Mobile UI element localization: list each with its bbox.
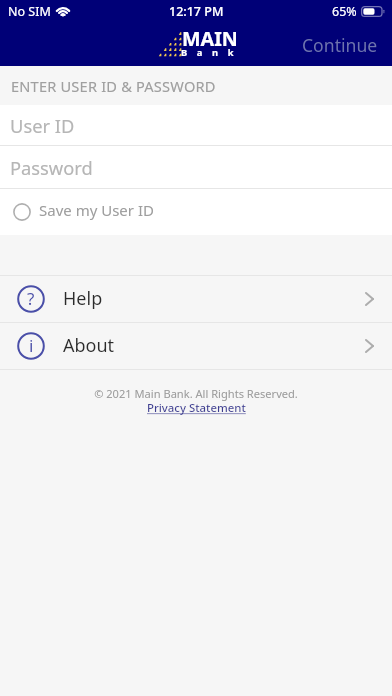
staticText: B a n k bbox=[181, 46, 238, 59]
staticText: 65% bbox=[332, 3, 357, 20]
button[interactable]: User ID bbox=[0, 105, 392, 145]
staticText: Save my User ID bbox=[39, 200, 154, 220]
staticText: Privacy Statement bbox=[147, 400, 246, 416]
button[interactable]: Save my User ID bbox=[0, 189, 392, 235]
staticText: 12:17 PM bbox=[169, 3, 224, 20]
staticText: MAIN bbox=[182, 25, 238, 52]
button[interactable]: Password bbox=[0, 146, 392, 188]
staticText: © 2021 Main Bank. All Rights Reserved. bbox=[94, 386, 298, 401]
button[interactable]: Main Bank bbox=[157, 25, 237, 65]
button[interactable]: ? bbox=[0, 276, 392, 322]
staticText: Password bbox=[10, 155, 93, 180]
staticText: ENTER USER ID & PASSWORD bbox=[11, 76, 216, 96]
staticText: Continue bbox=[302, 33, 378, 57]
button[interactable]: i bbox=[0, 323, 392, 369]
staticText: User ID bbox=[10, 113, 75, 138]
staticText: Help bbox=[63, 286, 103, 311]
staticText: No SIM bbox=[8, 3, 51, 20]
staticText: i bbox=[29, 334, 34, 357]
button[interactable]: Continue bbox=[288, 25, 392, 65]
staticText: About bbox=[63, 333, 115, 358]
staticText: ? bbox=[27, 287, 35, 310]
button[interactable]: Privacy Statement bbox=[147, 400, 246, 416]
